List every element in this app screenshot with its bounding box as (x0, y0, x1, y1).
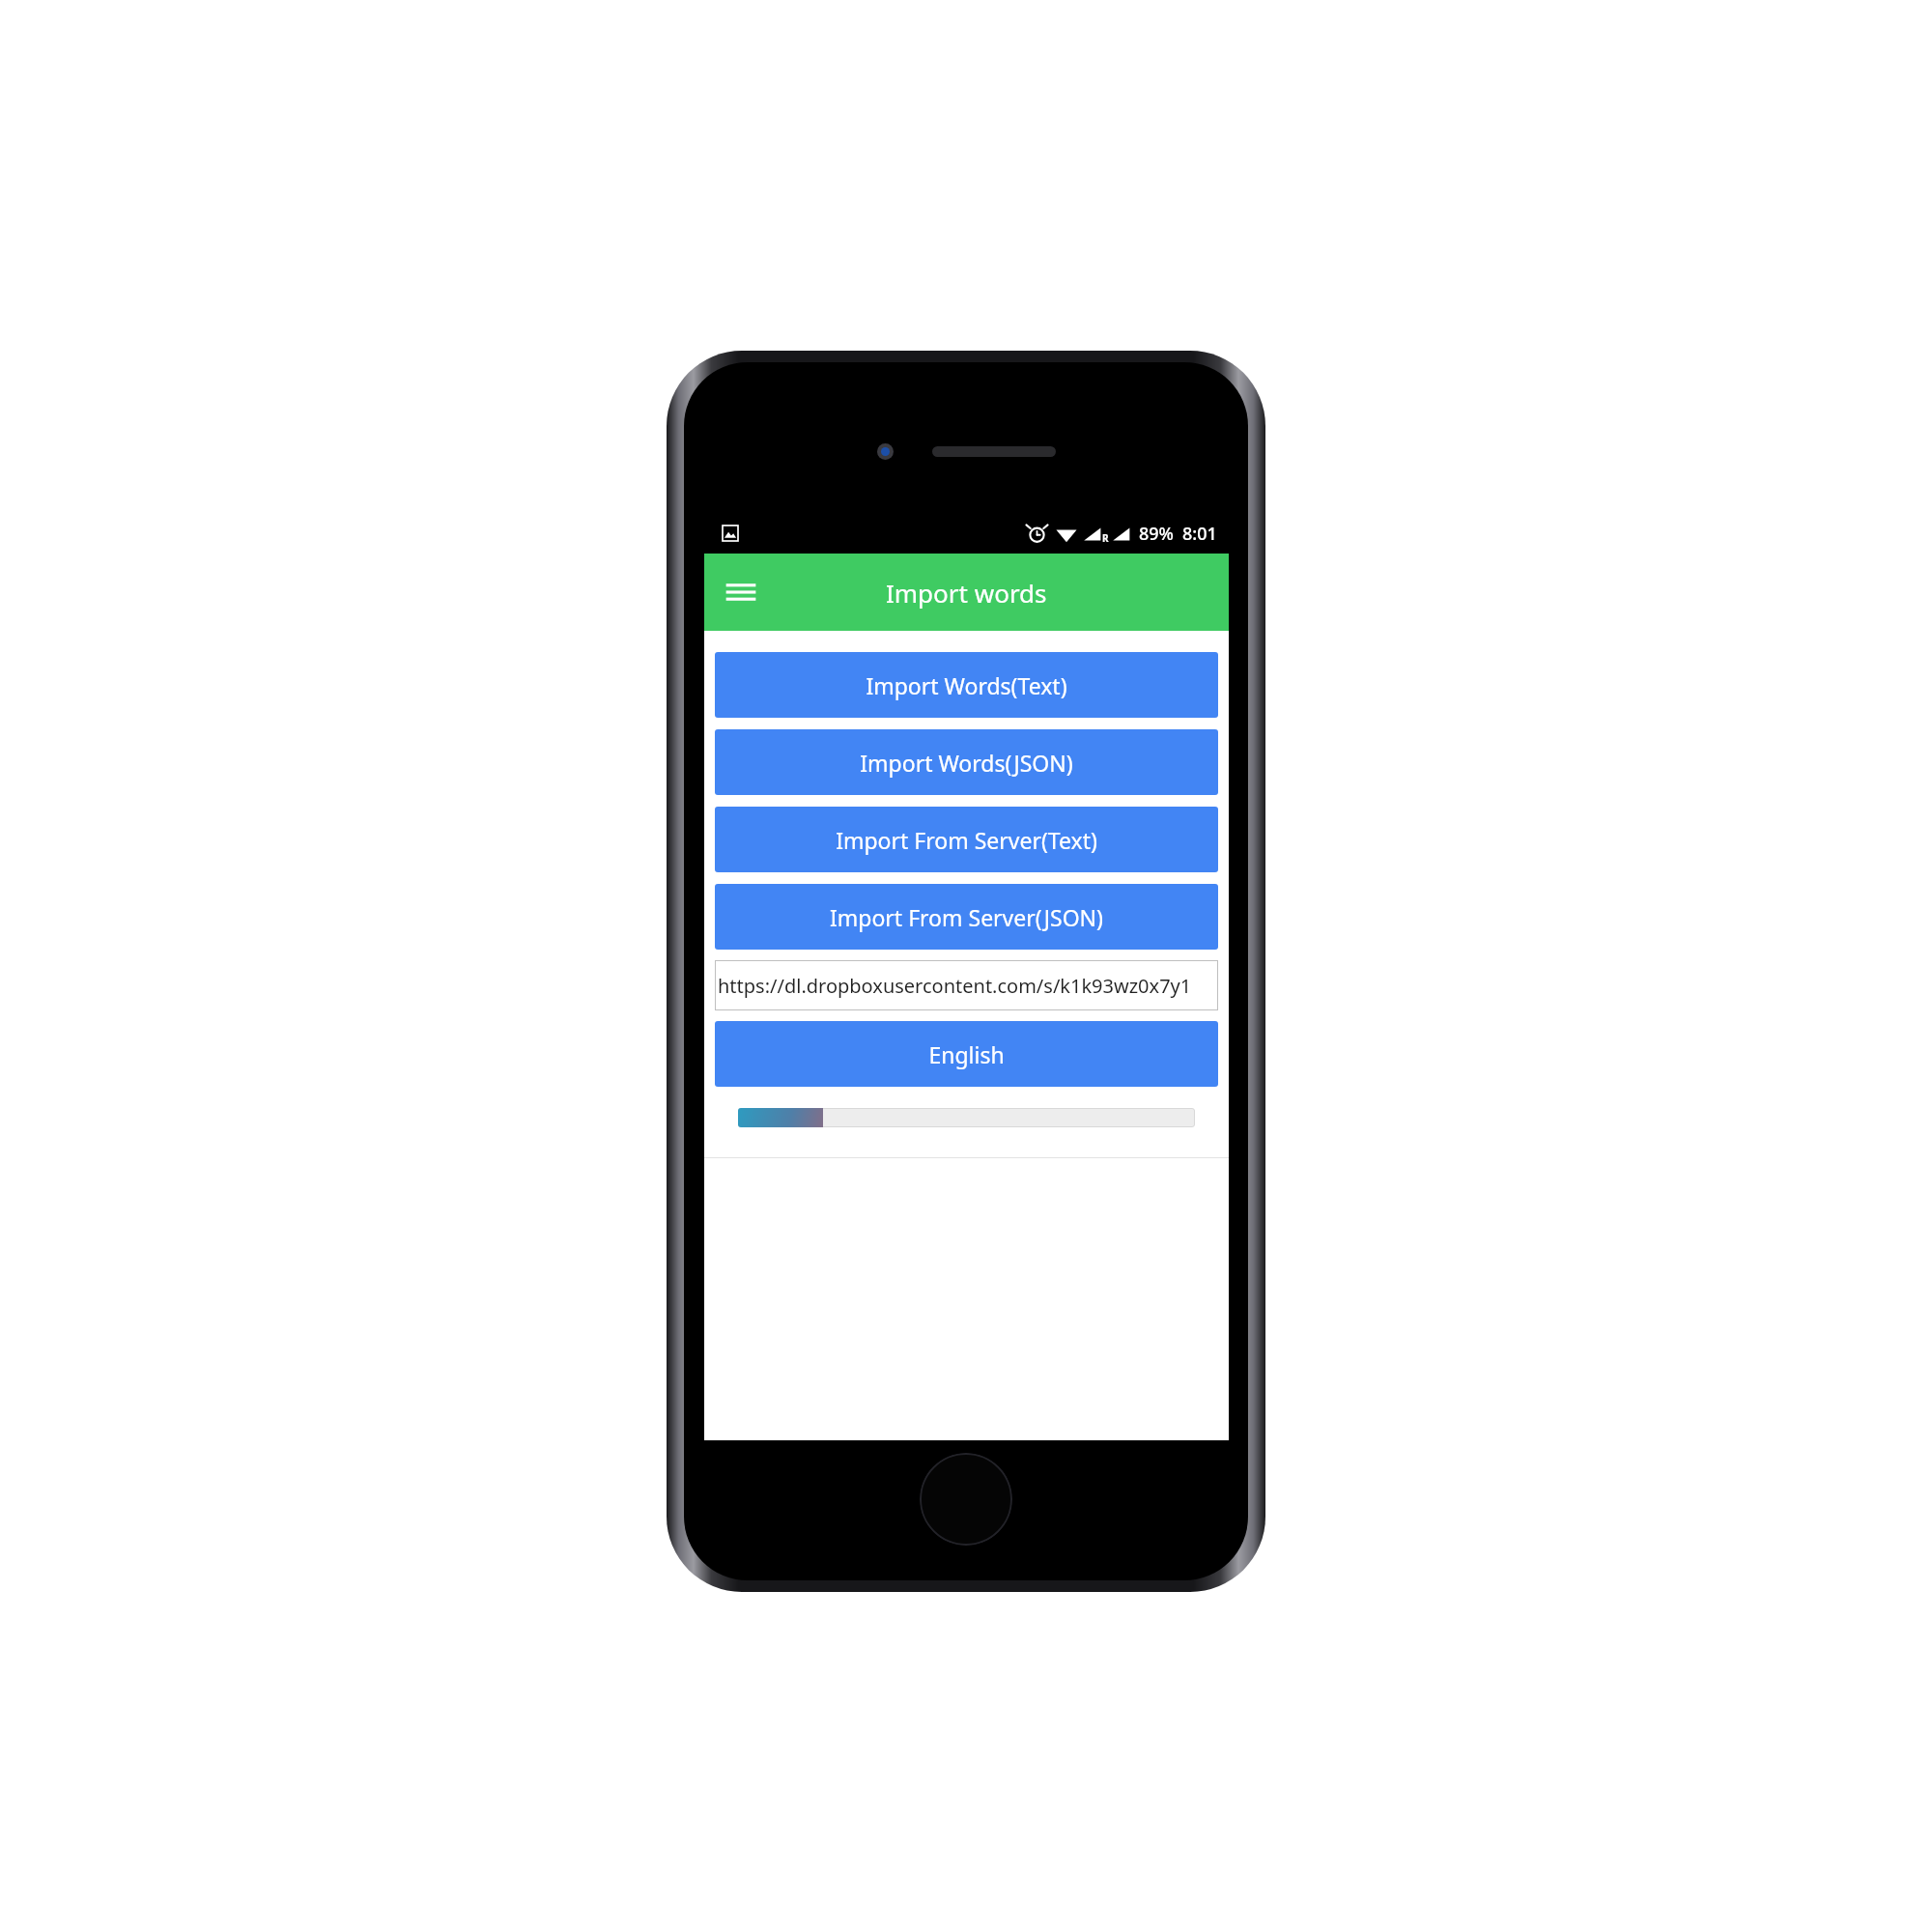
staticText: Import words (886, 576, 1047, 610)
staticText: R (1102, 531, 1109, 545)
button[interactable]: Import From Server(JSON) (715, 884, 1218, 950)
staticText: 8:01 (1182, 522, 1217, 546)
button[interactable]: Import Words(Text) (715, 652, 1218, 718)
button[interactable]: English (715, 1021, 1218, 1087)
button[interactable]: Import From Server(Text) (715, 807, 1218, 872)
staticText: Import Words(Text) (866, 670, 1067, 700)
staticText: 89% (1139, 522, 1174, 546)
button[interactable]: Open navigation menu (714, 565, 768, 619)
staticText: English (928, 1039, 1005, 1069)
staticText: Import From Server(JSON) (830, 902, 1103, 932)
staticText: https://dl.dropboxusercontent.com/s/k1k9… (718, 973, 1192, 999)
button[interactable]: Import Words(JSON) (715, 729, 1218, 795)
staticText: Import Words(JSON) (860, 748, 1073, 778)
button[interactable]: https://dl.dropboxusercontent.com/s/k1k9… (715, 960, 1218, 1010)
staticText: Import From Server(Text) (836, 825, 1097, 855)
